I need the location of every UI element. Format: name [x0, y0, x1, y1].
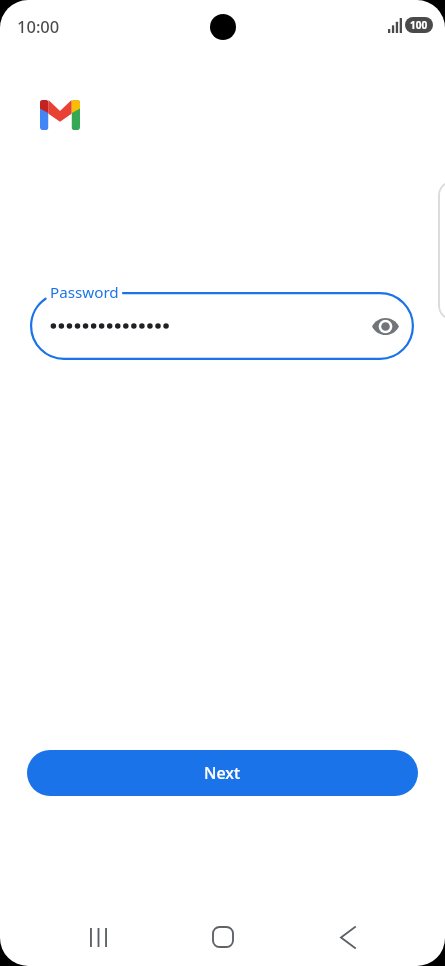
- button[interactable]: Back: [324, 913, 372, 961]
- button[interactable]: Home: [199, 913, 247, 961]
- button[interactable]: Next: [27, 750, 418, 796]
- staticText: 10:00: [17, 15, 60, 37]
- staticText: Next: [204, 762, 241, 784]
- staticText: Password: [50, 282, 119, 303]
- button[interactable]: Recents: [74, 913, 122, 961]
- button[interactable]: Show password: [369, 310, 401, 342]
- staticText: 100: [410, 18, 428, 32]
